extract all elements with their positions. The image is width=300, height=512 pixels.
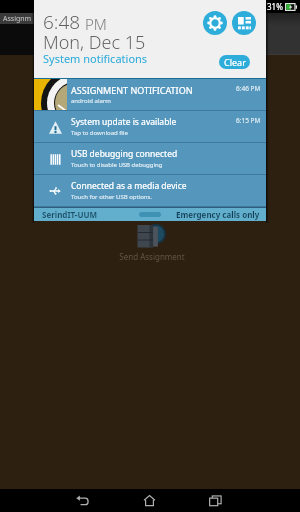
button[interactable]: System update is available xyxy=(34,111,266,143)
staticText: Emergency calls only xyxy=(176,209,260,220)
staticText: Clear xyxy=(224,56,246,68)
button[interactable]: USB debugging connected xyxy=(34,143,266,175)
staticText: 31% xyxy=(267,1,283,12)
staticText: Send Assignment xyxy=(119,251,185,262)
staticText: 6:15 PM xyxy=(236,116,261,125)
staticText: Assignm xyxy=(3,14,32,24)
button[interactable]: Settings xyxy=(203,11,227,35)
staticText: USB debugging connected xyxy=(71,148,178,160)
staticText: SerindIT-UUM xyxy=(42,209,98,220)
button[interactable]: Recents xyxy=(182,489,248,512)
staticText: Connected as a media device xyxy=(71,180,187,192)
staticText: System update is available xyxy=(71,116,177,128)
button[interactable]: Back xyxy=(49,489,115,512)
staticText: Touch for other USB options. xyxy=(71,193,153,201)
button[interactable]: System notifications xyxy=(43,51,148,66)
button[interactable]: Send Assignment xyxy=(136,222,166,252)
staticText: android alarm xyxy=(71,97,111,105)
button[interactable]: Home xyxy=(116,489,182,512)
staticText: Touch to disable USB debugging xyxy=(71,161,163,169)
button[interactable]: Connected as a media device xyxy=(34,175,266,207)
button[interactable]: Quick settings xyxy=(232,11,256,35)
staticText: ASSIGNMENT NOTIFICATION xyxy=(71,84,193,96)
staticText: 6:48 xyxy=(43,9,81,35)
button[interactable]: ASSIGNMENT NOTIFICATION xyxy=(34,79,266,111)
staticText: 6:46 PM xyxy=(236,84,261,93)
button[interactable]: Clear xyxy=(219,55,250,69)
staticText: PM xyxy=(85,14,107,34)
staticText: Mon, Dec 15 xyxy=(43,30,146,55)
staticText: Tap to download file xyxy=(71,129,128,137)
